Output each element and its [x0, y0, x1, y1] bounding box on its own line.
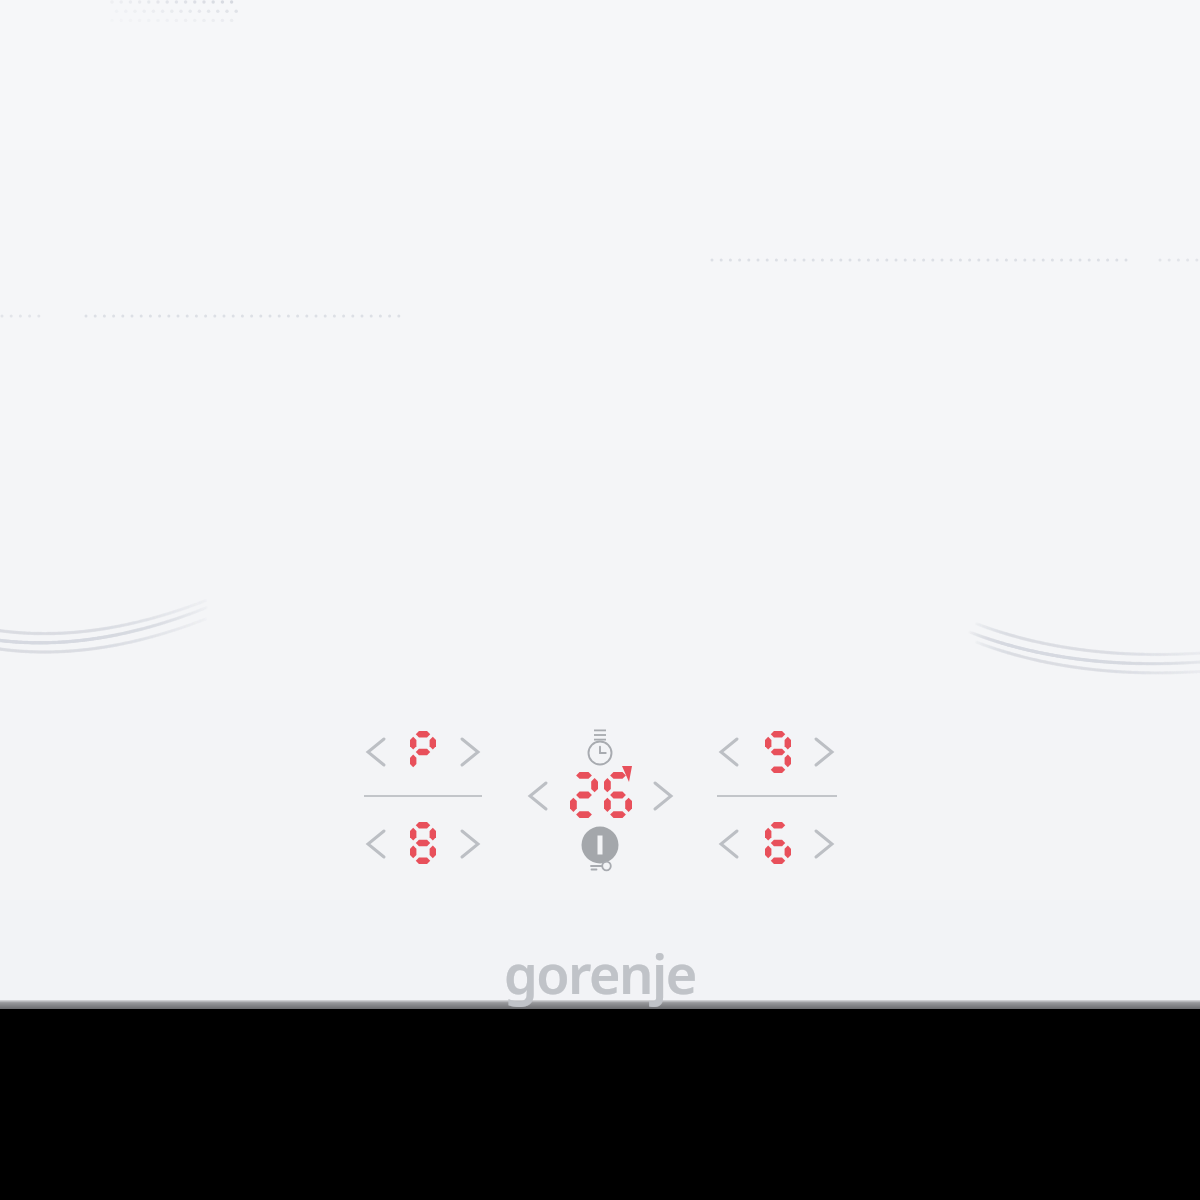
button[interactable]: Front right zone decrease: [711, 826, 749, 864]
staticText: gorenje: [504, 936, 696, 1010]
button[interactable]: Front left zone decrease: [358, 734, 396, 772]
button[interactable]: Rear right zone level 9: [753, 726, 805, 780]
button[interactable]: Rear right zone decrease: [711, 734, 749, 772]
button[interactable]: Timer decrease: [520, 778, 558, 816]
button[interactable]: Rear left zone level 8: [398, 818, 450, 872]
button[interactable]: Rear right zone increase: [806, 734, 844, 772]
button[interactable]: Front left zone increase: [452, 734, 490, 772]
button[interactable]: Rear left zone increase: [452, 826, 490, 864]
button[interactable]: Rear left zone decrease: [358, 826, 396, 864]
button[interactable]: Timer increase: [645, 778, 683, 816]
button[interactable]: Timer: [578, 730, 622, 776]
button[interactable]: Front right zone level 6: [753, 818, 805, 872]
button[interactable]: Timer value 26 minutes: [562, 766, 642, 824]
button[interactable]: Child lock: [584, 856, 618, 878]
button[interactable]: Front right zone increase: [806, 826, 844, 864]
button[interactable]: Power: [580, 825, 620, 865]
button[interactable]: Front left zone level P: [398, 726, 450, 780]
